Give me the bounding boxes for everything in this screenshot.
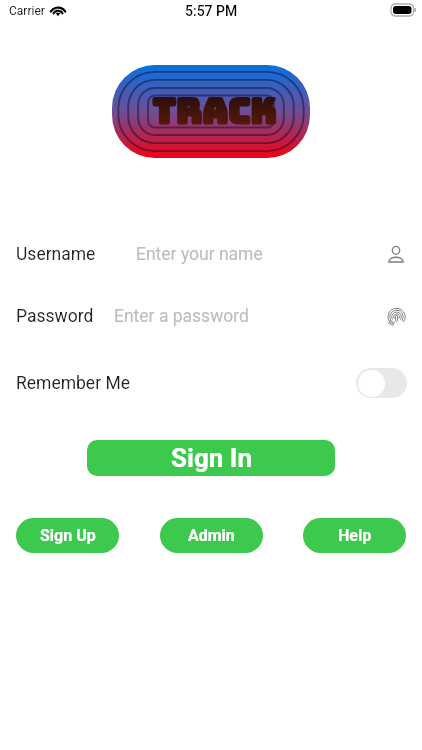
staticText: Username <box>16 244 96 265</box>
staticText: 5:57 PM <box>185 3 238 19</box>
button[interactable]: Remember Me <box>356 368 407 398</box>
button[interactable]: Admin <box>160 518 263 553</box>
staticText: Sign In <box>171 443 252 473</box>
button[interactable]: Fingerprint <box>382 301 410 331</box>
staticText: Sign Up <box>40 526 96 545</box>
staticText: Admin <box>188 526 235 545</box>
staticText: Enter a password <box>114 306 249 327</box>
button[interactable]: Sign In <box>87 440 335 476</box>
staticText: Enter your name <box>136 244 263 265</box>
staticText: TRACK <box>152 88 277 135</box>
staticText: Remember Me <box>16 373 130 394</box>
staticText: Password <box>16 306 94 327</box>
staticText: Carrier <box>9 4 45 18</box>
button[interactable]: Account <box>382 239 410 269</box>
staticText: Help <box>338 526 372 545</box>
button[interactable]: Help <box>303 518 406 553</box>
button[interactable]: Sign Up <box>16 518 119 553</box>
